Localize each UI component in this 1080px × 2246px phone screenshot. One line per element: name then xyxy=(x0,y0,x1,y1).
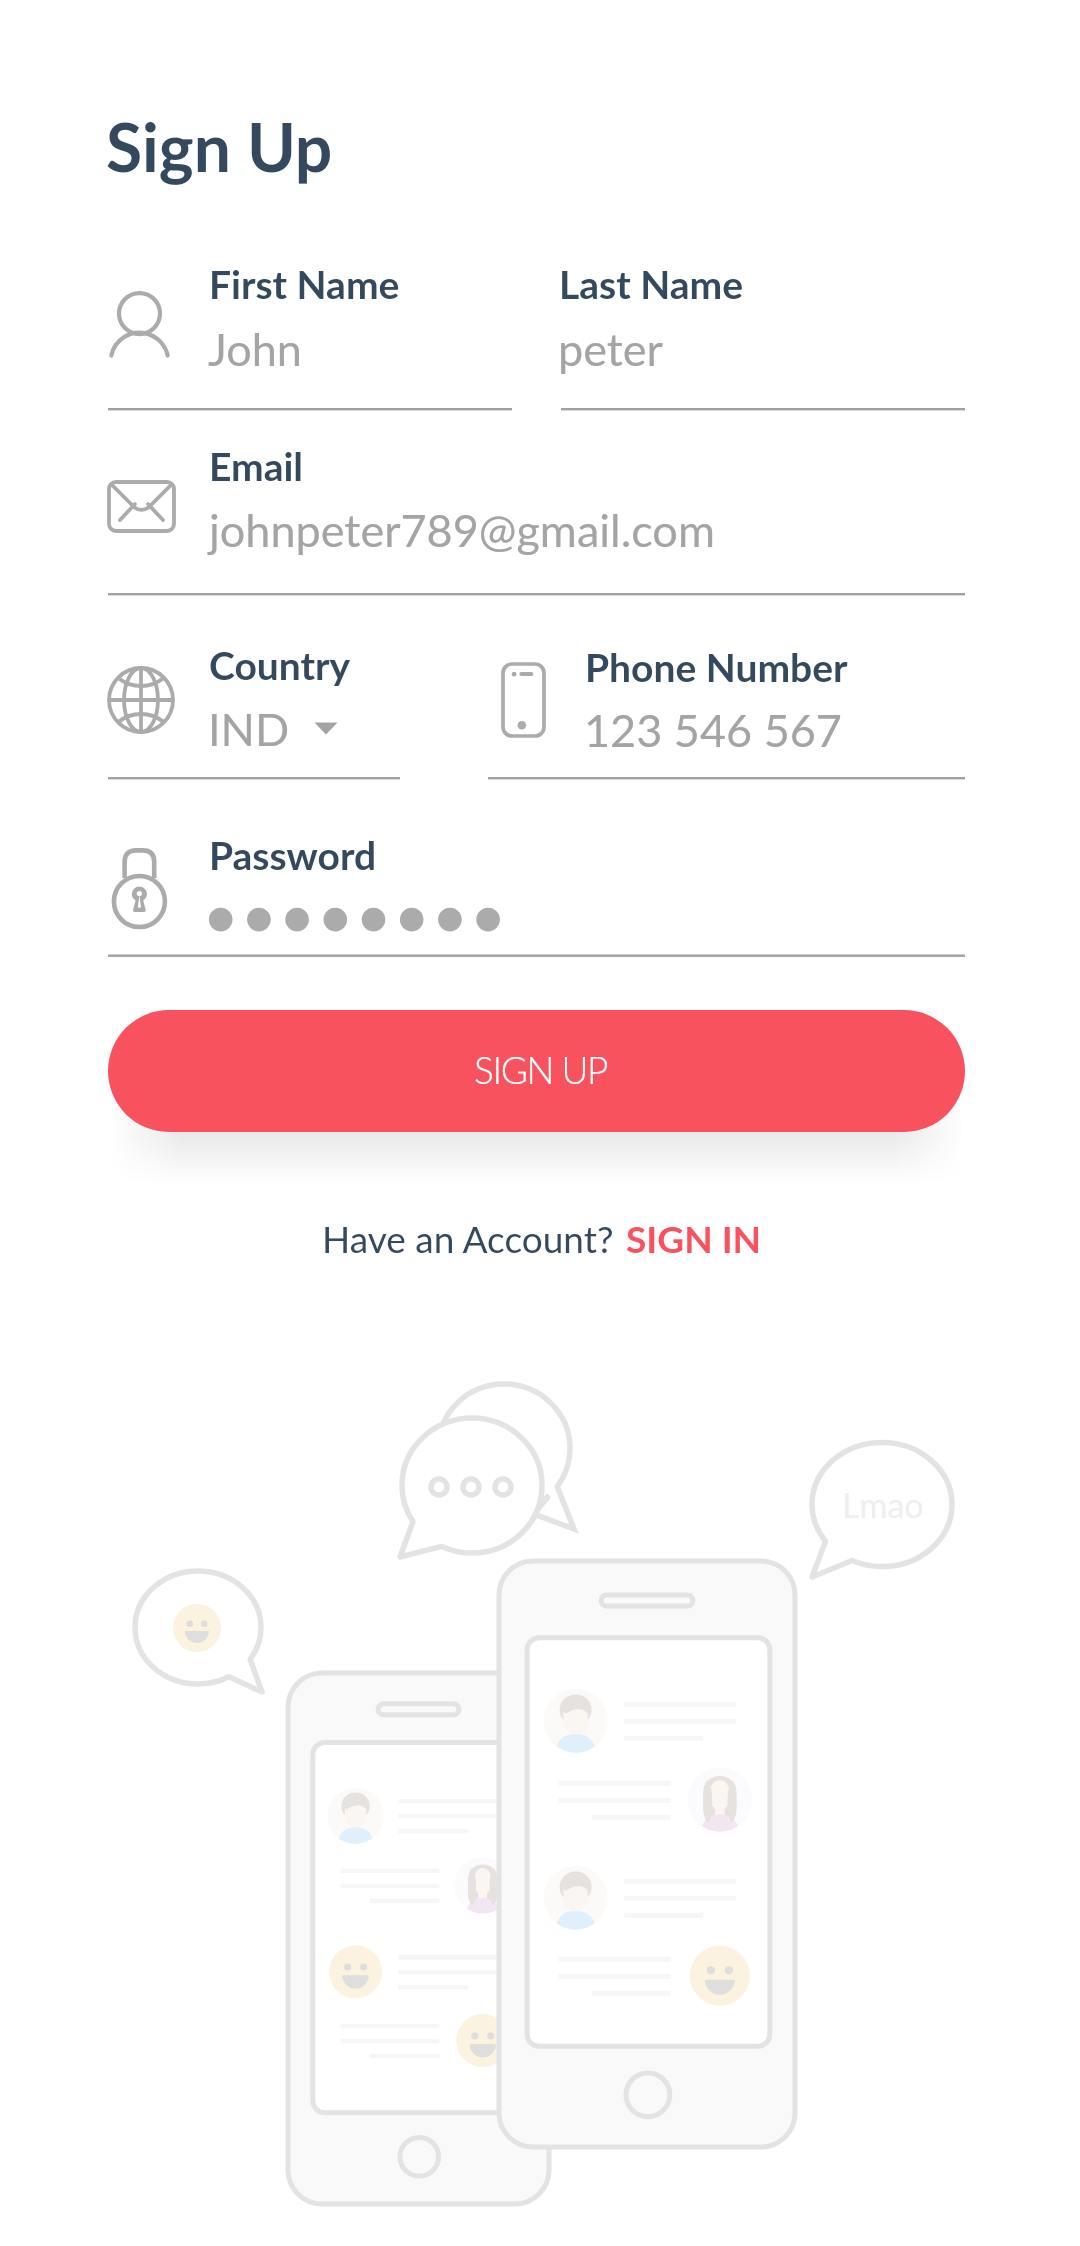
button[interactable]: SIGN IN xyxy=(626,1216,762,1260)
staticText: Password xyxy=(209,832,377,879)
staticText: johnpeter789@gmail.com xyxy=(209,503,715,557)
staticText: Last Name xyxy=(559,261,744,308)
staticText: First Name xyxy=(209,261,400,308)
button[interactable]: SIGN UP xyxy=(108,1010,965,1132)
staticText: Sign Up xyxy=(106,107,333,186)
staticText: SIGN IN xyxy=(626,1216,762,1260)
staticText: peter xyxy=(558,322,663,376)
staticText: Have an Account? xyxy=(322,1216,614,1260)
staticText: Country xyxy=(209,642,351,689)
button[interactable]: Have an Account? xyxy=(322,1216,614,1260)
staticText: IND xyxy=(208,702,290,756)
staticText: Lmao xyxy=(842,1484,924,1525)
staticText: Phone Number xyxy=(585,644,848,691)
staticText: SIGN UP xyxy=(474,1047,608,1091)
staticText: John xyxy=(208,322,302,376)
staticText: 123 546 567 xyxy=(584,703,842,757)
staticText: Email xyxy=(209,443,304,490)
